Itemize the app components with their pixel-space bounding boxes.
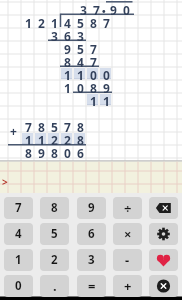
staticText: 3 xyxy=(77,28,84,41)
staticText: × xyxy=(124,225,132,243)
staticText: 1 xyxy=(15,252,22,268)
button[interactable] xyxy=(149,275,178,297)
staticText: 1 xyxy=(25,132,32,145)
staticText: 3 xyxy=(80,2,87,15)
staticText: 9 xyxy=(38,145,45,158)
staticText: 1 xyxy=(64,67,71,80)
staticText: 5 xyxy=(51,119,58,132)
staticText: - xyxy=(125,251,130,269)
staticText: 8 xyxy=(38,119,45,132)
staticText: 8 xyxy=(90,80,97,93)
button[interactable]: × xyxy=(113,223,142,245)
staticText: 8 xyxy=(77,132,84,145)
staticText: 3 xyxy=(51,28,58,41)
staticText: 6 xyxy=(64,28,71,41)
staticText: 1 xyxy=(90,93,97,106)
staticText: 9 xyxy=(88,200,95,216)
staticText: 0 xyxy=(77,80,84,93)
button[interactable]: 7 xyxy=(4,197,33,219)
staticText: 2 xyxy=(51,132,58,145)
staticText: 0 xyxy=(90,67,97,80)
staticText: 0 xyxy=(64,145,71,158)
staticText: 2 xyxy=(64,132,71,145)
staticText: 8 xyxy=(51,200,58,216)
staticText: 1 xyxy=(38,132,45,145)
button[interactable]: . xyxy=(40,275,69,297)
staticText: 2 xyxy=(38,15,45,28)
staticText: 2 xyxy=(51,252,58,268)
staticText: 8 xyxy=(77,119,84,132)
button[interactable] xyxy=(149,249,178,271)
staticText: 0 xyxy=(123,2,130,15)
staticText: 8 xyxy=(51,145,58,158)
staticText: 0 xyxy=(15,278,22,294)
button[interactable]: = xyxy=(77,275,106,297)
button[interactable]: + xyxy=(113,275,142,297)
staticText: 1 xyxy=(64,80,71,93)
button[interactable] xyxy=(149,197,178,219)
button[interactable]: 1 xyxy=(4,249,33,271)
staticText: 8 xyxy=(25,145,32,158)
button[interactable]: 8 xyxy=(40,197,69,219)
staticText: 7 xyxy=(90,54,97,67)
button[interactable]: 6 xyxy=(77,223,106,245)
staticText: 5 xyxy=(51,226,58,242)
staticText: 7 xyxy=(93,2,100,15)
button[interactable]: 3 xyxy=(77,249,106,271)
button[interactable]: 4 xyxy=(4,223,33,245)
staticText: 7 xyxy=(25,119,32,132)
staticText: . xyxy=(53,277,57,295)
staticText: 4 xyxy=(15,226,22,242)
button[interactable]: 5 xyxy=(40,223,69,245)
staticText: 4 xyxy=(64,15,71,28)
button[interactable]: 0 xyxy=(4,275,33,297)
button[interactable]: ÷ xyxy=(113,197,142,219)
staticText: = xyxy=(88,277,96,295)
staticText: 6 xyxy=(77,145,84,158)
button[interactable]: - xyxy=(113,249,142,271)
staticText: 1 xyxy=(51,15,58,28)
staticText: 3 xyxy=(88,252,95,268)
staticText: 8 xyxy=(64,54,71,67)
staticText: ÷ xyxy=(124,199,132,217)
staticText: 9 xyxy=(64,41,71,54)
button[interactable]: 2 xyxy=(40,249,69,271)
staticText: 7 xyxy=(15,200,22,216)
staticText: 5 xyxy=(77,41,84,54)
staticText: + xyxy=(124,277,132,295)
button[interactable]: 9 xyxy=(77,197,106,219)
staticText: 5 xyxy=(77,15,84,28)
staticText: 8 xyxy=(90,15,97,28)
staticText: 7 xyxy=(103,15,110,28)
staticText: 0 xyxy=(103,67,110,80)
staticText: + xyxy=(10,123,17,136)
staticText: 9 xyxy=(110,2,117,15)
staticText: 9 xyxy=(103,80,110,93)
staticText: 1 xyxy=(25,15,32,28)
staticText: 1 xyxy=(77,67,84,80)
staticText: 7 xyxy=(64,119,71,132)
staticText: 7 xyxy=(90,41,97,54)
button[interactable] xyxy=(149,223,178,245)
staticText: 6 xyxy=(88,226,95,242)
staticText: 4 xyxy=(77,54,84,67)
staticText: > xyxy=(2,175,8,189)
staticText: 1 xyxy=(103,93,110,106)
